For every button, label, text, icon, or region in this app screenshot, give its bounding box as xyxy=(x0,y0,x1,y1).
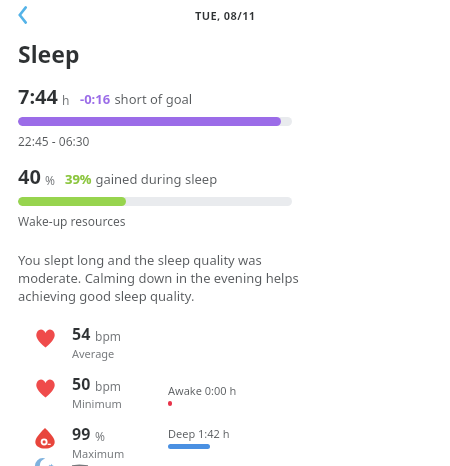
staticText: 39% xyxy=(65,170,92,188)
button[interactable]: 99 xyxy=(30,423,127,466)
staticText: Maximum xyxy=(72,446,125,461)
button[interactable]: Back xyxy=(6,0,40,30)
staticText: -0:16 xyxy=(80,90,111,108)
staticText: Awake 0:00 h xyxy=(168,383,237,398)
button[interactable]: Deep 1:42 h xyxy=(168,426,230,449)
staticText: gained during sleep xyxy=(92,170,218,188)
staticText: 50 xyxy=(72,373,91,395)
button[interactable]: 7:44 xyxy=(0,83,450,149)
staticText: h xyxy=(62,92,70,108)
button[interactable]: 54 xyxy=(30,323,121,361)
button[interactable]: 50 xyxy=(30,373,122,411)
staticText: short of goal xyxy=(111,90,193,108)
staticText: Wake-up resources xyxy=(18,213,126,229)
staticText: You slept long and the sleep quality was… xyxy=(18,251,300,305)
staticText: Minimum xyxy=(72,396,122,411)
staticText: % xyxy=(45,172,55,188)
staticText: 99 xyxy=(72,423,91,445)
staticText: 54 xyxy=(72,323,91,345)
staticText: bpm xyxy=(95,378,121,394)
staticText: % xyxy=(95,428,105,444)
staticText: Sleep xyxy=(18,38,80,69)
staticText: bpm xyxy=(95,328,121,344)
staticText: Deep 1:42 h xyxy=(168,426,230,441)
button[interactable]: Awake 0:00 h xyxy=(168,383,237,406)
staticText: Average xyxy=(72,346,115,361)
staticText: 7:44 xyxy=(18,83,58,110)
button[interactable]: 40 xyxy=(0,163,450,229)
staticText: 40 xyxy=(18,163,41,190)
staticText: TUE, 08/11 xyxy=(195,8,256,23)
staticText: 22:45 - 06:30 xyxy=(18,133,90,149)
